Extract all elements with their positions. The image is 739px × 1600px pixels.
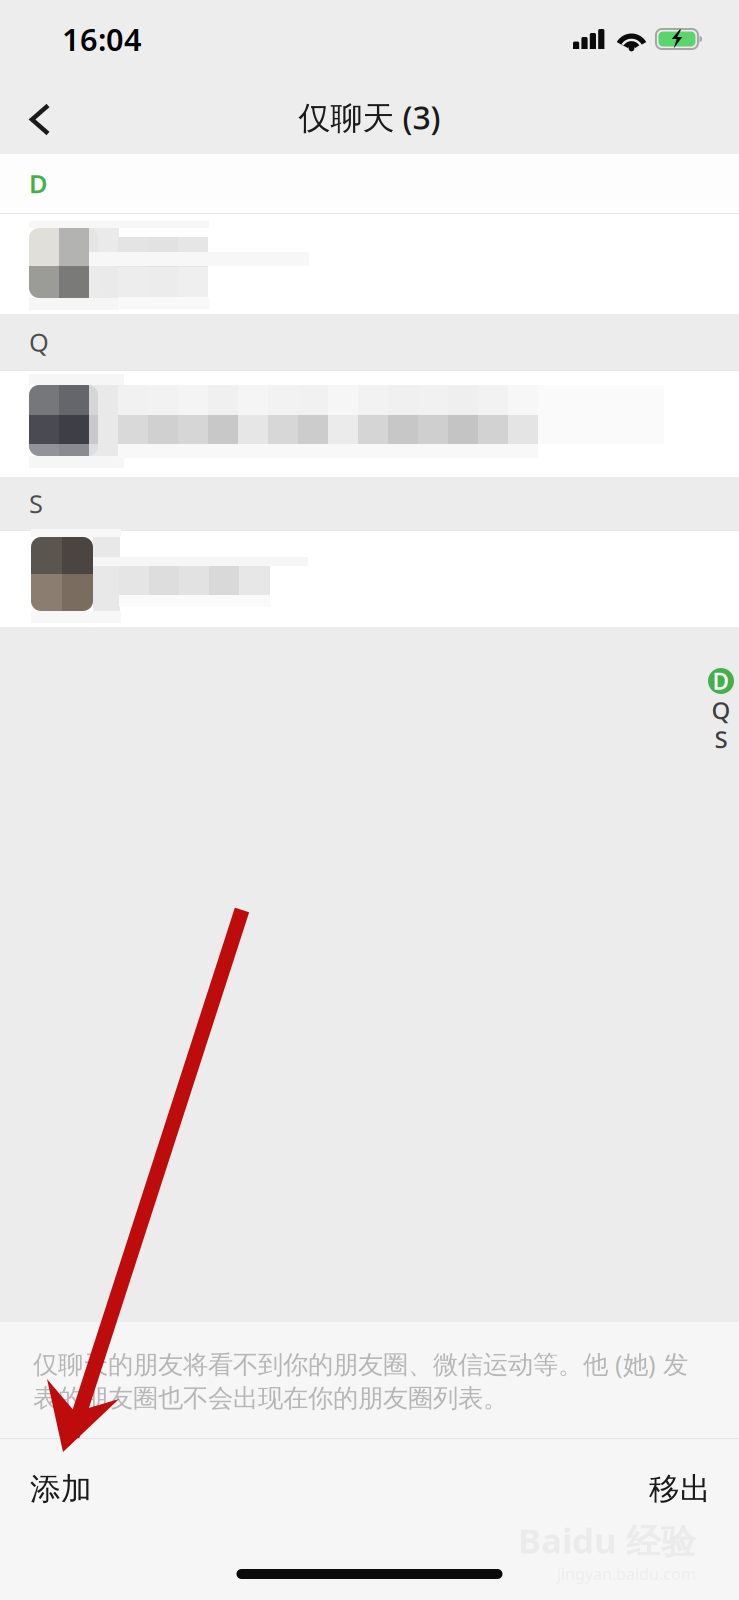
staticText: 表的朋友圈也不会出现在你的朋友圈列表。 <box>33 1383 508 1414</box>
staticText: S <box>714 723 727 755</box>
staticText: D <box>29 167 48 200</box>
button[interactable]: 移出 <box>625 1446 739 1532</box>
staticText: Q <box>711 694 730 726</box>
staticText: Q <box>29 325 49 359</box>
button[interactable] <box>0 214 739 314</box>
button[interactable]: D <box>708 668 734 694</box>
staticText: D <box>712 666 729 696</box>
button[interactable]: 添加 <box>0 1446 116 1532</box>
staticText: Baidu 经验 <box>518 1517 696 1563</box>
staticText: 添加 <box>30 1470 92 1508</box>
button[interactable]: S <box>708 726 734 752</box>
button[interactable] <box>0 531 739 628</box>
staticText: 16:04 <box>62 19 142 59</box>
staticText: 仅聊天的朋友将看不到你的朋友圈、微信运动等。他 (她) 发 <box>33 1347 688 1381</box>
staticText: 移出 <box>649 1470 711 1508</box>
button[interactable]: Q <box>708 697 734 723</box>
button[interactable]: Back <box>0 84 80 155</box>
button[interactable] <box>0 371 739 477</box>
staticText: 仅聊天 (3) <box>298 96 440 138</box>
staticText: S <box>29 487 43 520</box>
